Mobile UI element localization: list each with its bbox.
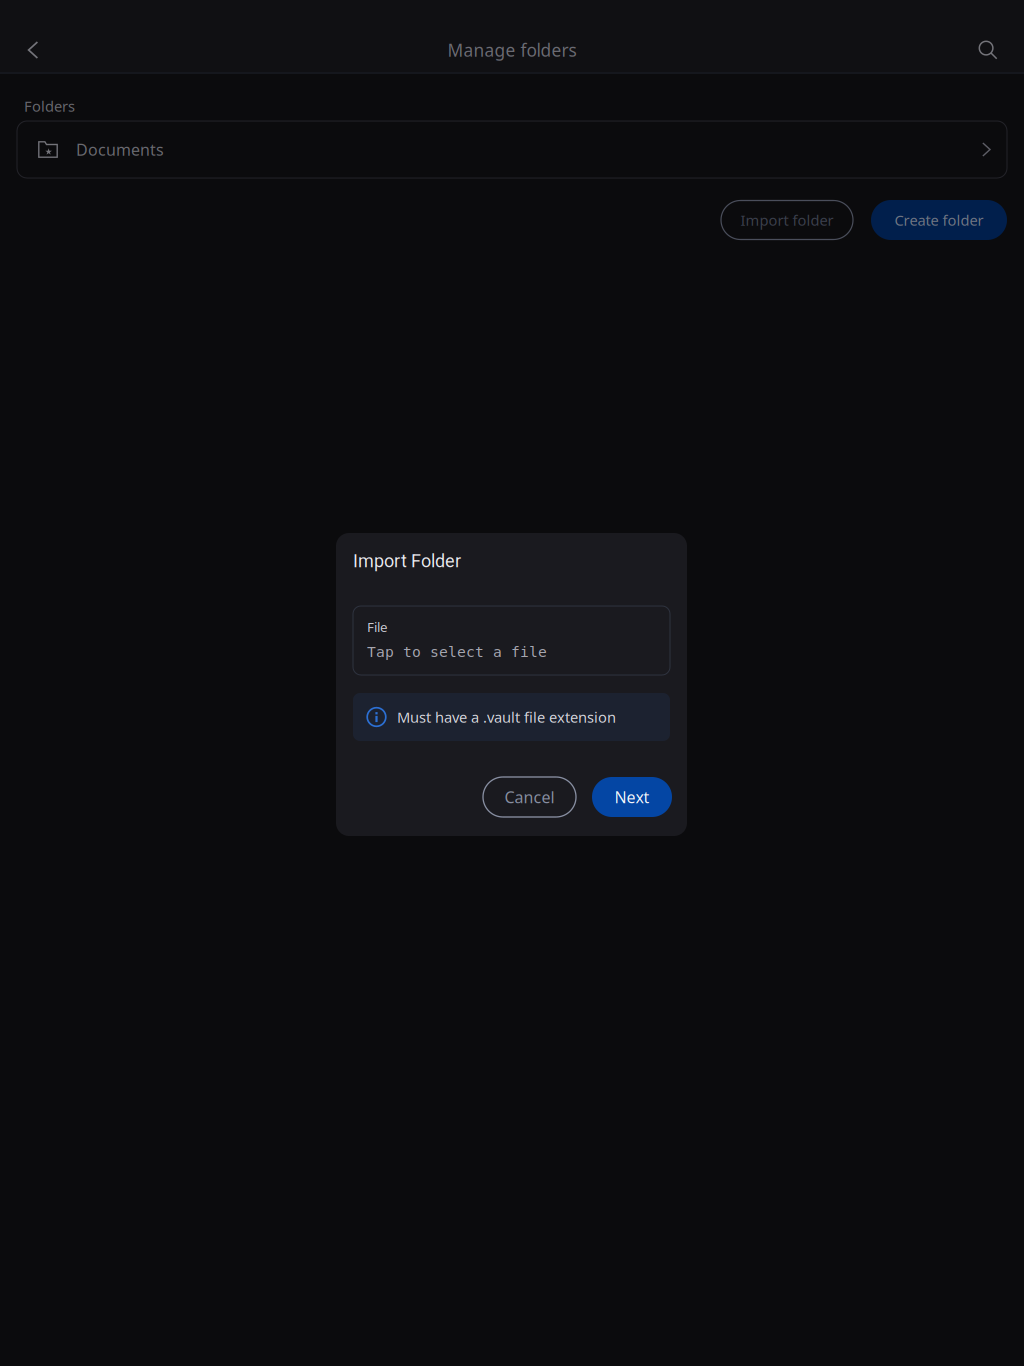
button[interactable]: Import folder xyxy=(721,200,853,239)
button[interactable]: File xyxy=(336,606,670,675)
staticText: Import Folder xyxy=(353,550,461,572)
button[interactable]: Next xyxy=(592,777,672,817)
staticText: Manage folders xyxy=(447,38,576,61)
button[interactable]: Back xyxy=(10,26,56,74)
button[interactable]: Documents xyxy=(0,121,1007,178)
staticText: Cancel xyxy=(504,786,554,808)
staticText: Create folder xyxy=(894,210,983,230)
staticText: Next xyxy=(614,786,649,808)
staticText: Import folder xyxy=(740,210,833,230)
staticText: Documents xyxy=(76,139,164,160)
button[interactable]: Create folder xyxy=(871,200,1007,240)
staticText: Folders xyxy=(24,96,75,116)
staticText: Tap to select a file xyxy=(367,644,547,660)
staticText: Must have a .vault file extension xyxy=(397,707,616,727)
staticText: File xyxy=(367,618,388,636)
button[interactable]: Search xyxy=(965,26,1011,74)
button[interactable]: Cancel xyxy=(483,777,576,817)
